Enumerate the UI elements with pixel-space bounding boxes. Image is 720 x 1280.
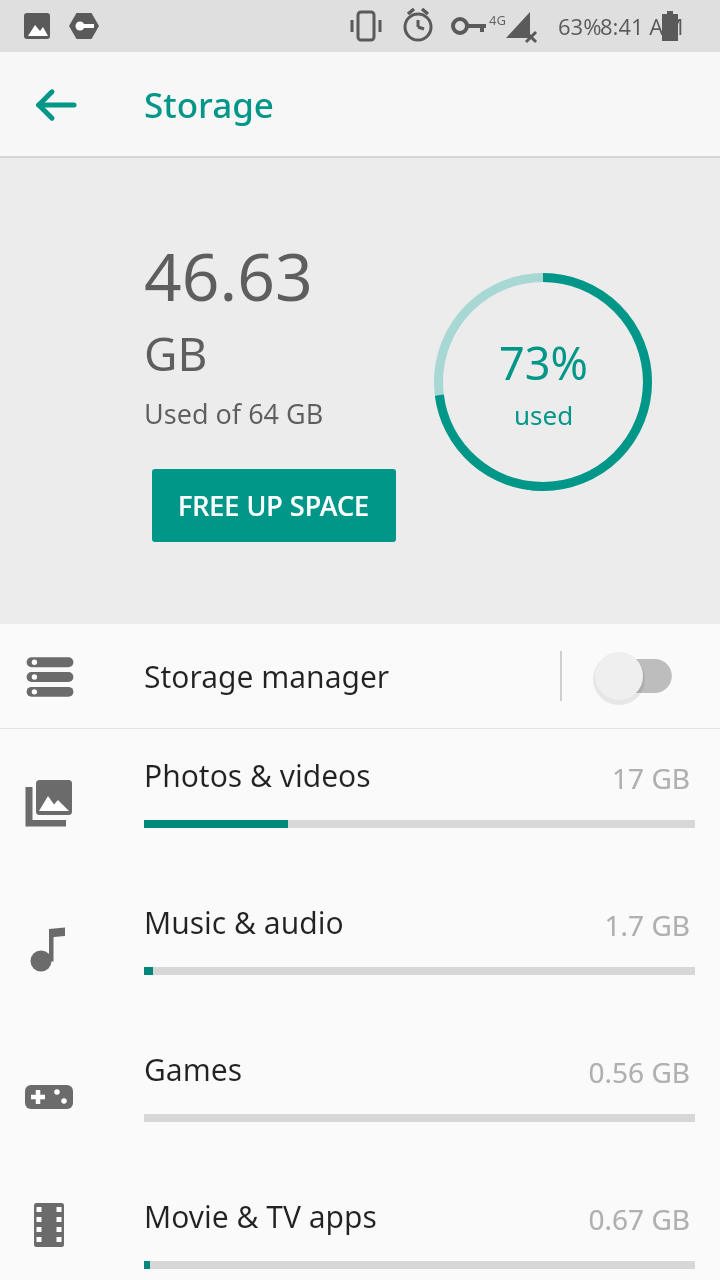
button[interactable]: Music & audio — [0, 876, 720, 1023]
staticText: 4G — [489, 11, 506, 29]
button[interactable]: Movie & TV apps — [0, 1170, 720, 1280]
staticText: 0.56 GB — [588, 1053, 690, 1091]
staticText: 8:41 AM — [600, 11, 684, 41]
button[interactable]: Back — [20, 69, 92, 141]
staticText: Storage — [144, 81, 274, 129]
button[interactable]: Storage manager toggle — [586, 636, 696, 716]
button[interactable]: Games — [0, 1023, 720, 1170]
button[interactable]: Photos & videos — [0, 729, 720, 876]
staticText: 46.63 — [144, 230, 313, 320]
staticText: Storage manager — [144, 656, 390, 697]
button[interactable]: Storage manager — [0, 624, 720, 728]
staticText: FREE UP SPACE — [178, 487, 370, 524]
staticText: Movie & TV apps — [144, 1196, 377, 1237]
staticText: 1.7 GB — [604, 906, 690, 944]
staticText: Photos & videos — [144, 755, 371, 796]
staticText: Used of 64 GB — [144, 395, 324, 432]
staticText: 0.67 GB — [588, 1200, 690, 1238]
staticText: GB — [144, 322, 208, 385]
staticText: 63% — [558, 11, 602, 41]
button[interactable]: FREE UP SPACE — [152, 469, 396, 542]
staticText: Games — [144, 1049, 243, 1090]
staticText: Music & audio — [144, 902, 344, 943]
staticText: 73% — [499, 332, 588, 393]
staticText: 17 GB — [612, 759, 690, 797]
staticText: used — [514, 397, 574, 432]
